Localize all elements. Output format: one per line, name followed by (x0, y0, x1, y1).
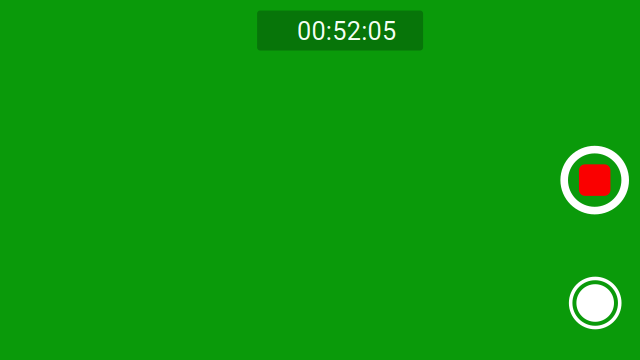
button[interactable]: Take photo (569, 277, 621, 329)
button[interactable]: Stop recording (560, 146, 629, 215)
staticText: 00:52:05 (297, 16, 396, 46)
button[interactable]: 00:52:05 (257, 10, 423, 50)
